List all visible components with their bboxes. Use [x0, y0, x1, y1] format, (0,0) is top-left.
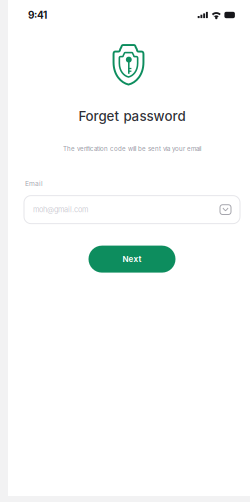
staticText: The verification code will be sent via y…: [63, 145, 201, 152]
staticText: Email: [25, 180, 43, 188]
staticText: 9:41: [28, 9, 47, 21]
staticText: Forget password: [78, 108, 185, 124]
button[interactable]: Next: [88, 246, 175, 273]
staticText: moh@gmail.com: [33, 205, 88, 214]
staticText: Next: [122, 254, 141, 264]
